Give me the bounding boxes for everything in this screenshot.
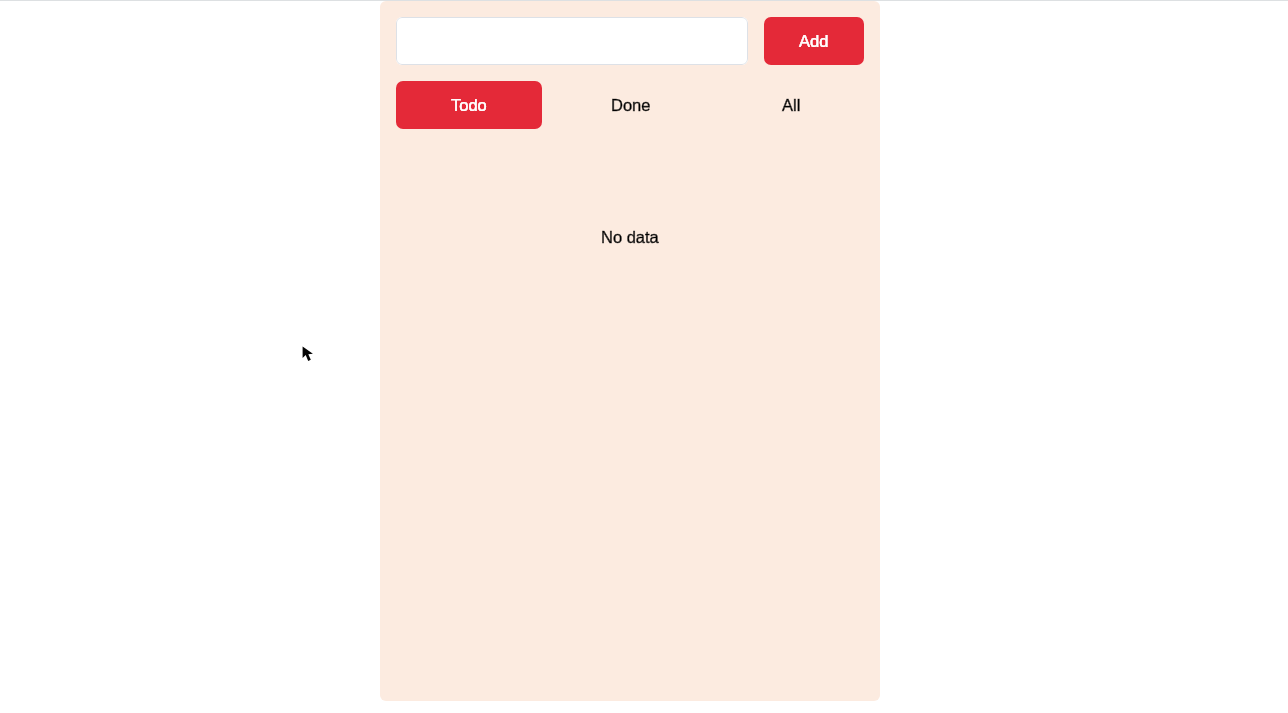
button[interactable]: Add (764, 17, 864, 65)
staticText: Done (611, 96, 651, 114)
staticText: No data (601, 228, 659, 246)
staticText: All (782, 96, 801, 114)
button[interactable]: All (719, 81, 864, 129)
staticText: Add (799, 32, 829, 50)
staticText: Todo (451, 96, 487, 114)
staticText: Todo (451, 96, 487, 114)
button[interactable]: Done (558, 81, 703, 129)
staticText: All (782, 96, 801, 114)
button[interactable]: Todo (396, 81, 542, 129)
staticText: Done (611, 96, 651, 114)
staticText: Add (799, 32, 829, 50)
staticText: No data (601, 228, 659, 246)
button[interactable]: New todo input (396, 17, 748, 65)
